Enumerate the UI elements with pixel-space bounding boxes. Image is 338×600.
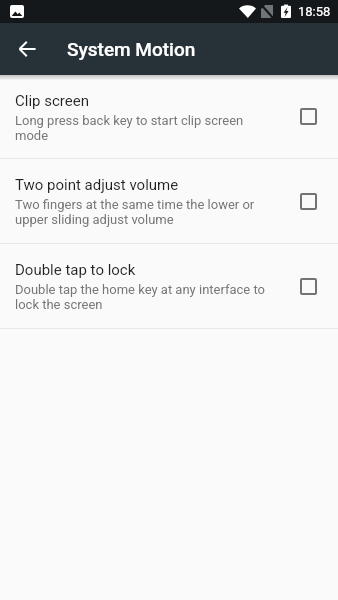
staticText: 18:58: [298, 4, 331, 19]
button[interactable]: Double tap to lock: [289, 267, 327, 305]
button[interactable]: Two point adjust volume: [289, 182, 327, 220]
staticText: Double tap the home key at any interface…: [15, 282, 273, 312]
staticText: Clip screen: [15, 92, 89, 110]
staticText: Two point adjust volume: [15, 176, 179, 194]
staticText: System Motion: [67, 38, 196, 60]
staticText: Double tap to lock: [15, 261, 136, 279]
button[interactable]: Clip screen: [289, 97, 327, 135]
button[interactable]: Two point adjust volume: [0, 159, 338, 243]
staticText: Long press back key to start clip screen…: [15, 113, 273, 143]
button[interactable]: Double tap to lock: [0, 244, 338, 328]
staticText: Two fingers at the same time the lower o…: [15, 197, 273, 227]
button[interactable]: Clip screen: [0, 75, 338, 158]
button[interactable]: Back: [3, 25, 51, 73]
